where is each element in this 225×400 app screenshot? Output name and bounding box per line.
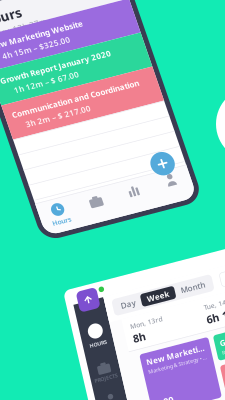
- button[interactable]: HOURS: [70, 330, 101, 367]
- staticText: HOURS: [76, 347, 94, 354]
- button[interactable]: Previous week: [219, 313, 225, 327]
- button[interactable]: [45, 221, 84, 245]
- button[interactable]: [84, 221, 123, 245]
- button[interactable]: Day: [110, 313, 137, 326]
- staticText: ‹: [224, 313, 225, 327]
- button[interactable]: Month: [172, 313, 209, 326]
- staticText: [63, 236, 65, 245]
- staticText: Communication and Coordination: [0, 120, 105, 130]
- button[interactable]: Communication and Coordination: [0, 113, 123, 149]
- staticText: Day: [116, 315, 131, 325]
- staticText: PROJECTS: [73, 382, 97, 389]
- staticText: Reports • Internal: [204, 387, 225, 394]
- staticText: 1h 12m – $ 67.00: [0, 96, 51, 107]
- staticText: 6h 15m: [196, 348, 225, 362]
- staticText: Tue, 14th: [196, 338, 225, 347]
- staticText: Mon, 13rd: [120, 338, 153, 347]
- staticText: Marketing & Strategy • Memory m: [128, 387, 189, 394]
- staticText: Growth Report January 2020: [204, 376, 225, 386]
- staticText: Week: [143, 315, 166, 325]
- staticText: Growth Report January 2020: [0, 84, 88, 94]
- staticText: New Marketing Website: [128, 376, 189, 386]
- button[interactable]: New Marketing Website: [0, 41, 123, 77]
- staticText: Today, 13h 27m: [0, 36, 37, 47]
- staticText: 1:00: [204, 396, 222, 400]
- staticText: New Marketing Website: [0, 48, 71, 58]
- staticText: 4h 15m – $325.00: [0, 60, 54, 71]
- button[interactable]: [6, 221, 45, 245]
- button[interactable]: PROJECTS: [70, 367, 101, 400]
- button[interactable]: Week: [137, 313, 172, 326]
- button[interactable]: New Marketing Website: [123, 372, 194, 400]
- button[interactable]: Growth Report January 2020: [199, 372, 225, 398]
- button[interactable]: Add entry: [89, 198, 113, 222]
- staticText: 3h 2m – $ 217.00: [0, 132, 51, 143]
- button[interactable]: Growth Report January 2020: [0, 77, 123, 113]
- staticText: Hours: [0, 18, 17, 35]
